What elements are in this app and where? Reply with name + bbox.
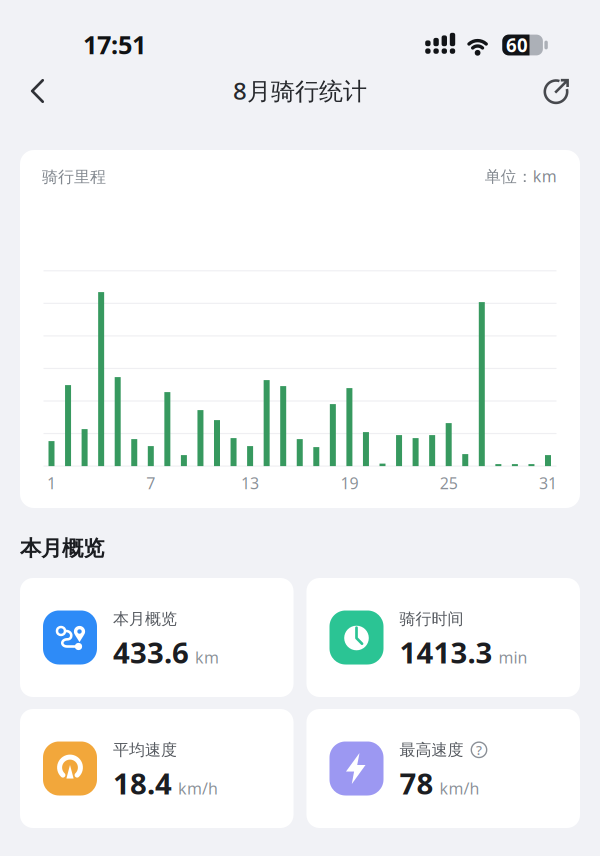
staticText: 8月骑行统计 bbox=[233, 75, 367, 106]
button[interactable]: Back bbox=[16, 69, 60, 113]
button[interactable]: Share bbox=[534, 68, 578, 112]
staticText: 1 bbox=[47, 472, 56, 494]
button[interactable]: Info bbox=[470, 741, 487, 758]
staticText: 7 bbox=[146, 472, 155, 494]
staticText: 最高速度 bbox=[399, 740, 463, 760]
staticText: 433.6 bbox=[113, 633, 189, 672]
staticText: 本月概览 bbox=[113, 609, 177, 629]
staticText: km/h bbox=[439, 778, 479, 799]
staticText: 17:51 bbox=[83, 28, 146, 61]
staticText: 18.4 bbox=[113, 764, 172, 803]
staticText: 60 bbox=[506, 33, 528, 57]
staticText: 骑行时间 bbox=[399, 609, 463, 629]
staticText: 31 bbox=[539, 472, 557, 494]
staticText: 单位：km bbox=[485, 165, 557, 187]
staticText: 骑行里程 bbox=[42, 167, 106, 187]
staticText: 78 bbox=[399, 764, 433, 803]
staticText: 平均速度 bbox=[113, 740, 177, 760]
staticText: km bbox=[195, 647, 219, 668]
staticText: 本月概览 bbox=[20, 535, 104, 562]
staticText: 25 bbox=[440, 472, 458, 494]
staticText: 19 bbox=[340, 472, 358, 494]
staticText: 1413.3 bbox=[399, 633, 492, 672]
staticText: 13 bbox=[241, 472, 259, 494]
staticText: min bbox=[498, 647, 527, 668]
staticText: km/h bbox=[178, 778, 218, 799]
staticText: ? bbox=[476, 741, 482, 759]
